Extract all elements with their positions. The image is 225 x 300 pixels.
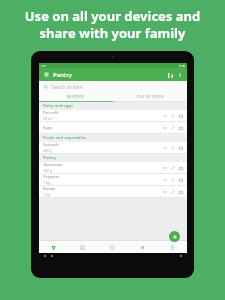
button[interactable]: More options [176,71,184,79]
button[interactable]: Eggs [39,122,187,133]
staticText: Tomatoes [43,162,63,168]
staticText: Spinach [43,142,59,148]
staticText: Bread [43,186,55,192]
staticText: Peppers [43,174,60,180]
staticText: 1 kg [43,180,51,185]
button[interactable]: Edit [169,112,177,120]
button[interactable]: Delete [177,188,185,196]
button[interactable]: Peppers [39,174,187,185]
staticText: Search an item [51,84,83,90]
staticText: Use on all your devices and share with y… [10,7,215,42]
button[interactable]: Sort [166,71,174,79]
button[interactable]: Delete [177,144,185,152]
button[interactable]: Edit [169,144,177,152]
staticText: Pantry [43,155,57,161]
staticText: Fruits and vegetables [43,135,86,141]
staticText: Dairy and eggs [43,103,73,109]
button[interactable]: Decrease [161,188,169,196]
button[interactable]: Menu [43,71,50,78]
button[interactable]: Tab 3 [97,241,127,253]
button[interactable]: Delete [177,124,185,132]
button[interactable]: Delete [177,112,185,120]
button[interactable]: Decrease [161,124,169,132]
button[interactable]: Fat milk [39,110,187,121]
button[interactable]: Tab 2 [68,241,97,253]
button[interactable]: Decrease [161,144,169,152]
staticText: IN STOCK [67,94,85,99]
button[interactable]: Spinach [39,142,187,153]
button[interactable]: Decrease [161,176,169,184]
staticText: 50 ml [43,116,53,121]
staticText: Fat milk [43,110,59,116]
button[interactable]: Decrease [161,164,169,172]
staticText: Eggs [43,125,53,131]
button[interactable]: Tab 1 [39,241,68,253]
button[interactable]: OUT OF STOCK [113,92,187,101]
staticText: OUT OF STOCK [137,94,164,99]
button[interactable]: Edit [169,164,177,172]
staticText: 200 g [43,148,53,153]
staticText: 500 g [43,168,53,173]
button[interactable]: Bread [39,186,187,197]
staticText: Pantry [53,71,72,79]
button[interactable]: Decrease [161,112,169,120]
button[interactable]: Edit [169,188,177,196]
button[interactable]: Tab 5 [157,241,187,253]
button[interactable]: Delete [177,164,185,172]
staticText: 1 kg [43,192,51,197]
button[interactable]: Tomatoes [39,162,187,173]
button[interactable]: Add item [169,231,180,242]
button[interactable]: Delete [177,176,185,184]
button[interactable]: Tab 4 [127,241,157,253]
button[interactable]: Edit [169,124,177,132]
button[interactable]: Edit [169,176,177,184]
button[interactable]: IN STOCK [39,92,113,101]
